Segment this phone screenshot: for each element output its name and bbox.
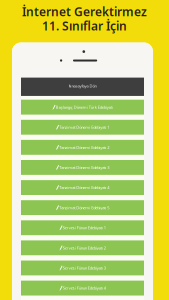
staticText: Başlangıç Dönemi Türk Edebiyatı [56,104,113,110]
staticText: Servet-i Fünun Edebiyatı 3 [63,265,106,271]
button[interactable]: Tanzimat Dönemi Edebiyatı 5 [21,200,144,215]
button[interactable]: Servet-i Fünun Edebiyatı 2 [21,240,144,255]
staticText: Anasayfaya Dön [68,83,96,89]
button[interactable]: Servet-i Fünun Edebiyatı 1 [21,220,144,235]
button[interactable]: Tanzimat Dönemi Edebiyatı 4 [21,180,144,195]
staticText: Servet-i Fünun Edebiyatı 2 [63,245,106,250]
button[interactable]: Anasayfaya Dön [21,78,144,96]
staticText: Tanzimat Dönemi Edebiyatı 5 [59,205,109,210]
button[interactable]: Servet-i Fünun Edebiyatı 3 [21,260,144,275]
staticText: Tanzimat Dönemi Edebiyatı 1 [59,125,109,130]
staticText: Tanzimat Dönemi Edebiyatı 3 [59,165,109,170]
button[interactable]: Tanzimat Dönemi Edebiyatı 3 [21,160,144,175]
button[interactable]: Tanzimat Dönemi Edebiyatı 2 [21,140,144,155]
staticText: İnternet Gerektirmez [22,4,147,19]
staticText: Tanzimat Dönemi Edebiyatı 2 [59,145,109,150]
staticText: Servet-i Fünun Edebiyatı 1 [63,225,106,230]
button[interactable]: Servet-i Fünun Edebiyatı 4 [21,281,144,295]
button[interactable]: Başlangıç Dönemi Türk Edebiyatı [21,100,144,115]
staticText: Servet-i Fünun Edebiyatı 4 [63,285,106,291]
staticText: Tanzimat Dönemi Edebiyatı 4 [59,185,109,190]
staticText: 11. Sınıflar İçin [42,18,127,34]
button[interactable]: Tanzimat Dönemi Edebiyatı 1 [21,120,144,135]
